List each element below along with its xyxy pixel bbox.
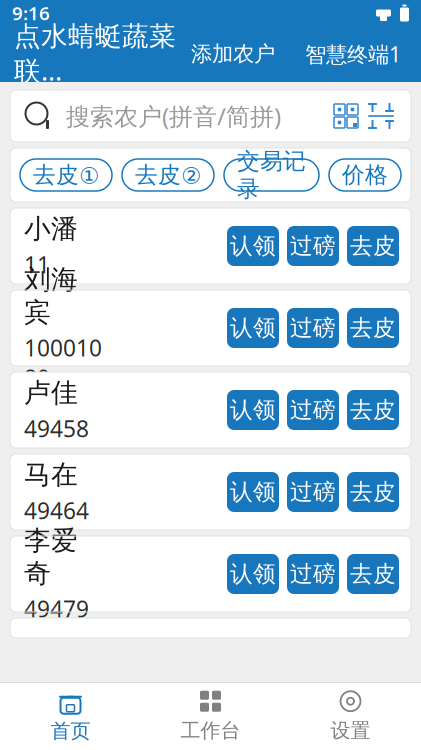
staticText: 过磅: [290, 396, 336, 424]
staticText: 去皮②: [135, 161, 201, 189]
button[interactable]: 去皮: [347, 390, 399, 430]
staticText: 去皮: [350, 396, 396, 424]
button[interactable]: 扫描二维码: [329, 103, 363, 129]
button[interactable]: 过磅: [287, 554, 339, 594]
staticText: 小潘: [24, 213, 78, 245]
staticText: 智慧终端1: [305, 40, 401, 68]
button[interactable]: 认领: [227, 308, 279, 348]
staticText: 认领: [230, 478, 276, 506]
button[interactable]: 过磅: [287, 390, 339, 430]
staticText: 过磅: [290, 314, 336, 342]
button[interactable]: 去皮: [347, 308, 399, 348]
staticText: 李爱奇: [24, 524, 78, 590]
button[interactable]: 添加农户: [185, 35, 281, 73]
staticText: 10001080: [24, 333, 102, 393]
button[interactable]: 认领: [227, 472, 279, 512]
button[interactable]: 交易记录: [224, 159, 319, 191]
button[interactable]: 去皮: [347, 472, 399, 512]
staticText: 去皮: [350, 560, 396, 588]
button[interactable]: 去皮①: [20, 159, 112, 191]
staticText: 交易记录: [237, 147, 306, 203]
staticText: 设置: [330, 718, 370, 743]
staticText: 去皮: [350, 232, 396, 260]
button[interactable]: 智慧终端1: [299, 34, 407, 74]
staticText: 去皮: [350, 314, 396, 342]
staticText: 9:16: [12, 1, 50, 25]
staticText: 49464: [24, 495, 89, 525]
button[interactable]: 首页: [0, 685, 140, 747]
staticText: 卢佳: [24, 377, 78, 409]
staticText: 认领: [230, 314, 276, 342]
staticText: 认领: [230, 396, 276, 424]
staticText: 认领: [230, 560, 276, 588]
button[interactable]: 过磅: [287, 472, 339, 512]
staticText: 过磅: [290, 560, 336, 588]
staticText: 过磅: [290, 232, 336, 260]
button[interactable]: 过磅: [287, 308, 339, 348]
staticText: 去皮①: [33, 161, 99, 189]
staticText: 工作台: [180, 718, 240, 743]
staticText: 49479: [24, 594, 89, 624]
staticText: 添加农户: [191, 41, 275, 67]
button[interactable]: 过磅: [287, 226, 339, 266]
button[interactable]: 认领: [227, 226, 279, 266]
button[interactable]: 去皮: [347, 554, 399, 594]
staticText: 过磅: [290, 478, 336, 506]
staticText: 马在: [24, 459, 78, 491]
button[interactable]: 扫一扫: [363, 102, 399, 130]
button[interactable]: 工作台: [140, 685, 280, 747]
staticText: 49458: [24, 413, 89, 443]
button[interactable]: 价格: [329, 159, 401, 191]
staticText: 价格: [342, 161, 388, 189]
staticText: 首页: [50, 719, 90, 743]
staticText: 去皮: [350, 478, 396, 506]
staticText: 搜索农户(拼音/简拼): [66, 100, 281, 132]
button[interactable]: 认领: [227, 390, 279, 430]
button[interactable]: 去皮: [347, 226, 399, 266]
staticText: 11: [24, 249, 50, 279]
staticText: 点水蜻蜓蔬菜联...: [14, 20, 176, 88]
button[interactable]: 设置: [280, 685, 420, 747]
staticText: 认领: [230, 232, 276, 260]
button[interactable]: 去皮②: [122, 159, 214, 191]
button[interactable]: 认领: [227, 554, 279, 594]
staticText: 刘海宾: [24, 263, 78, 329]
